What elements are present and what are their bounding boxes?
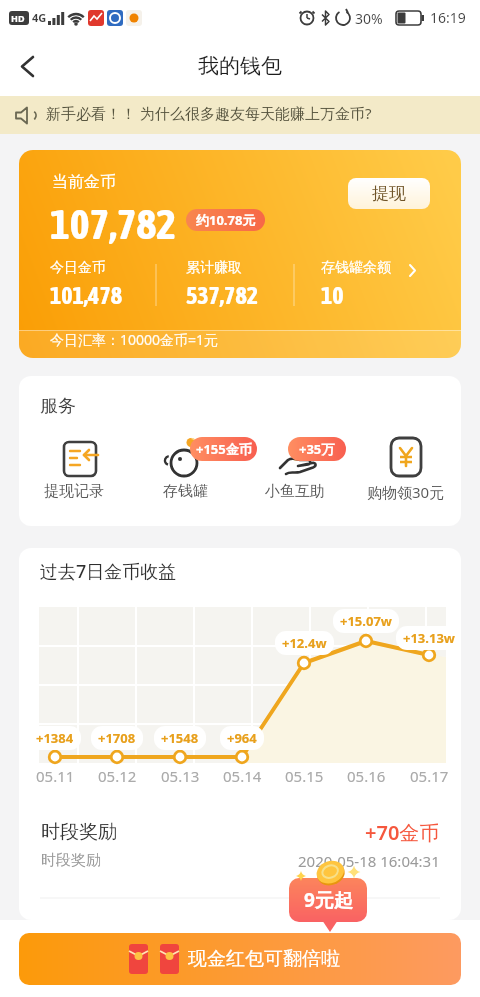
staticText: 05.14 bbox=[223, 766, 262, 786]
staticText: 购物领30元 bbox=[367, 482, 445, 502]
staticText: HD bbox=[11, 12, 25, 24]
button[interactable]: 我的钱包 bbox=[0, 36, 480, 96]
staticText: 05.13 bbox=[161, 766, 200, 786]
staticText: +1548 bbox=[161, 729, 199, 747]
staticText: 提现记录 bbox=[44, 482, 104, 501]
staticText: +12.4w bbox=[282, 634, 327, 652]
staticText: 存钱罐 bbox=[163, 482, 208, 501]
button[interactable]: 新手必看！！ 为什么很多趣友每天能赚上万金币? bbox=[0, 96, 480, 134]
staticText: 提现 bbox=[372, 183, 406, 204]
staticText: 107,782 bbox=[50, 200, 176, 248]
staticText: 过去7日金币收益 bbox=[40, 559, 177, 584]
staticText: 05.15 bbox=[285, 766, 324, 786]
button[interactable]: 当前金币 bbox=[19, 150, 461, 358]
staticText: 累计赚取 bbox=[186, 259, 242, 277]
button[interactable]: 提现 bbox=[348, 178, 430, 209]
staticText: 今日金币 bbox=[50, 259, 106, 277]
button[interactable]: 存钱罐 bbox=[140, 482, 230, 501]
staticText: +35万 bbox=[299, 440, 335, 458]
staticText: 现金红包可翻倍啦 bbox=[188, 947, 340, 971]
staticText: 当前金币 bbox=[52, 172, 116, 192]
staticText: 2020-05-18 16:04:31 bbox=[298, 851, 440, 871]
staticText: +1708 bbox=[98, 729, 136, 747]
staticText: 新手必看！！ 为什么很多趣友每天能赚上万金币? bbox=[46, 103, 372, 123]
staticText: 我的钱包 bbox=[198, 53, 282, 79]
staticText: 16:19 bbox=[430, 8, 466, 27]
staticText: 9元起 bbox=[304, 887, 353, 913]
staticText: 10 bbox=[321, 282, 344, 310]
staticText: 时段奖励 bbox=[41, 820, 117, 844]
button[interactable]: 小鱼互助 bbox=[250, 482, 340, 501]
staticText: +155金币 bbox=[196, 440, 252, 458]
staticText: 101,478 bbox=[50, 282, 122, 310]
staticText: 05.17 bbox=[410, 766, 449, 786]
button[interactable]: 提现记录 bbox=[29, 482, 119, 501]
staticText: 小鱼互助 bbox=[265, 482, 325, 501]
staticText: 服务 bbox=[40, 395, 76, 418]
button[interactable]: 9元起 bbox=[289, 878, 367, 922]
staticText: +964 bbox=[227, 729, 257, 747]
staticText: 05.12 bbox=[98, 766, 137, 786]
button[interactable]: 现金红包可翻倍啦 bbox=[19, 933, 461, 985]
staticText: 存钱罐余额 bbox=[321, 259, 391, 277]
staticText: 05.16 bbox=[347, 766, 386, 786]
staticText: 今日汇率：10000金币=1元 bbox=[50, 330, 219, 349]
staticText: +70金币 bbox=[365, 819, 440, 846]
staticText: +13.13w bbox=[403, 629, 455, 647]
staticText: 05.11 bbox=[36, 766, 75, 786]
staticText: 约10.78元 bbox=[196, 211, 256, 229]
staticText: 4G bbox=[32, 10, 47, 25]
button[interactable]: 购物领30元 bbox=[355, 482, 457, 502]
staticText: +1384 bbox=[36, 729, 74, 747]
staticText: +15.07w bbox=[340, 612, 392, 630]
staticText: 537,782 bbox=[186, 282, 258, 310]
staticText: 30% bbox=[355, 9, 383, 28]
staticText: 时段奖励 bbox=[41, 851, 101, 870]
